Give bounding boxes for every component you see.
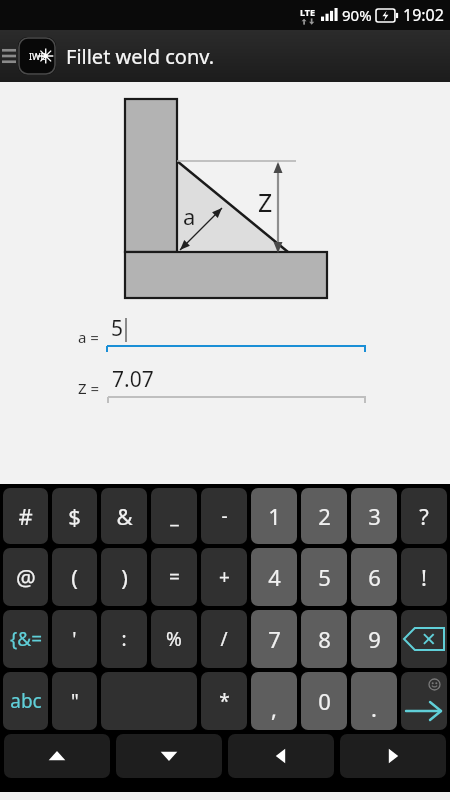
staticText: 9 bbox=[368, 624, 381, 654]
staticText: 19:02 bbox=[403, 4, 444, 26]
button[interactable]: $ bbox=[52, 488, 97, 544]
staticText: 5 bbox=[111, 314, 124, 343]
staticText: a = bbox=[78, 327, 99, 347]
staticText: 5 bbox=[318, 562, 331, 592]
button[interactable]: Enter bbox=[401, 672, 447, 730]
button[interactable]: a = bbox=[78, 314, 366, 353]
staticText: abc bbox=[10, 688, 42, 714]
button[interactable]: ! bbox=[401, 548, 447, 606]
staticText: 90% bbox=[342, 5, 372, 25]
button[interactable]: Delete bbox=[401, 610, 447, 668]
button[interactable]: 9 bbox=[351, 610, 397, 668]
button[interactable]: 3 bbox=[351, 488, 397, 544]
staticText: Z = bbox=[78, 378, 100, 398]
staticText: @ bbox=[16, 562, 36, 592]
button[interactable]: # bbox=[3, 488, 48, 544]
button[interactable]: Space bbox=[101, 672, 197, 730]
staticText: , bbox=[271, 693, 277, 723]
staticText: / bbox=[220, 626, 228, 652]
staticText: * bbox=[219, 688, 230, 714]
staticText: 3 bbox=[368, 501, 381, 531]
button[interactable]: ) bbox=[101, 548, 147, 606]
staticText: a bbox=[183, 201, 196, 231]
button[interactable]: abc bbox=[3, 672, 48, 730]
staticText: 7 bbox=[268, 624, 281, 654]
staticText: _ bbox=[170, 503, 179, 529]
staticText: . bbox=[371, 693, 377, 723]
staticText: - bbox=[221, 503, 228, 529]
staticText: + bbox=[219, 564, 230, 590]
button[interactable]: 4 bbox=[251, 548, 297, 606]
staticText: 0 bbox=[318, 686, 331, 716]
staticText: " bbox=[71, 688, 79, 714]
button[interactable]: ? bbox=[401, 488, 447, 544]
button[interactable]: _ bbox=[151, 488, 197, 544]
staticText: ) bbox=[121, 562, 128, 592]
button[interactable]: Menu bbox=[0, 30, 450, 82]
button[interactable]: Up bbox=[4, 734, 110, 778]
button[interactable]: + bbox=[201, 548, 247, 606]
button[interactable]: * bbox=[201, 672, 247, 730]
button[interactable]: ( bbox=[52, 548, 97, 606]
staticText: LTE bbox=[300, 6, 316, 18]
button[interactable]: 7 bbox=[251, 610, 297, 668]
button[interactable]: Left bbox=[228, 734, 334, 778]
button[interactable]: % bbox=[151, 610, 197, 668]
button[interactable]: 1 bbox=[251, 488, 297, 544]
button[interactable]: Down bbox=[116, 734, 222, 778]
button[interactable]: 2 bbox=[301, 488, 347, 544]
staticText: ! bbox=[421, 562, 427, 592]
staticText: $ bbox=[68, 501, 81, 531]
button[interactable]: , bbox=[251, 672, 297, 730]
button[interactable]: 5 bbox=[301, 548, 347, 606]
other: Menu bbox=[2, 45, 16, 67]
staticText: # bbox=[18, 501, 33, 531]
button[interactable]: = bbox=[151, 548, 197, 606]
button[interactable]: Z = bbox=[78, 365, 366, 404]
button[interactable]: ' bbox=[52, 610, 97, 668]
staticText: Fillet weld conv. bbox=[66, 43, 214, 70]
staticText: 1 bbox=[268, 501, 281, 531]
button[interactable]: Right bbox=[340, 734, 446, 778]
button[interactable]: 6 bbox=[351, 548, 397, 606]
staticText: Z bbox=[258, 185, 273, 219]
button[interactable]: - bbox=[201, 488, 247, 544]
staticText: = bbox=[169, 564, 180, 590]
button[interactable]: & bbox=[101, 488, 147, 544]
button[interactable]: 0 bbox=[301, 672, 347, 730]
button[interactable]: @ bbox=[3, 548, 48, 606]
staticText: {&= bbox=[10, 626, 42, 652]
staticText: 4 bbox=[268, 562, 281, 592]
staticText: ' bbox=[72, 626, 77, 652]
button[interactable]: {&= bbox=[3, 610, 48, 668]
staticText: : bbox=[121, 626, 127, 652]
staticText: ( bbox=[71, 562, 78, 592]
staticText: 2 bbox=[318, 501, 331, 531]
button[interactable]: " bbox=[52, 672, 97, 730]
button[interactable]: . bbox=[351, 672, 397, 730]
staticText: IWE bbox=[29, 50, 46, 62]
staticText: 8 bbox=[318, 624, 331, 654]
staticText: ? bbox=[419, 501, 429, 531]
staticText: % bbox=[166, 626, 182, 652]
staticText: & bbox=[116, 501, 133, 531]
staticText: 6 bbox=[368, 562, 381, 592]
button[interactable]: 8 bbox=[301, 610, 347, 668]
button[interactable]: / bbox=[201, 610, 247, 668]
button[interactable]: : bbox=[101, 610, 147, 668]
staticText: 7.07 bbox=[112, 365, 154, 394]
